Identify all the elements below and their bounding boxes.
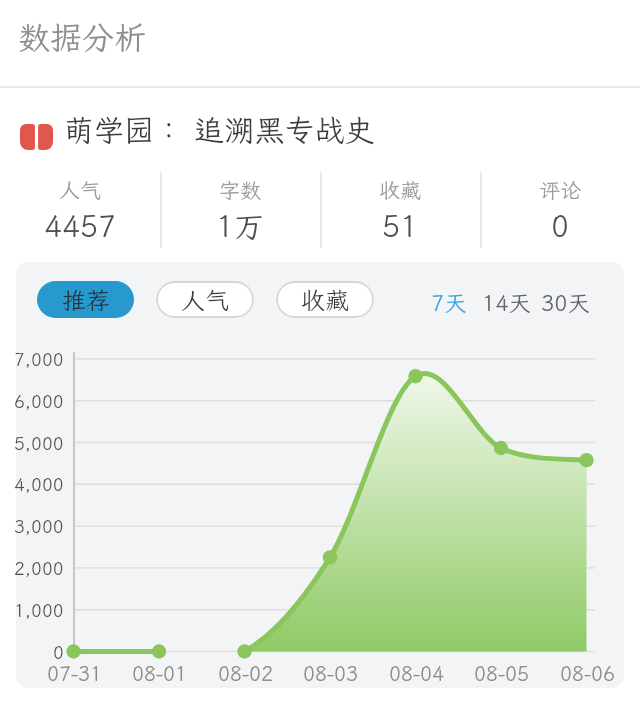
button[interactable]: 收藏	[276, 281, 374, 318]
staticText: 3,000	[14, 514, 64, 538]
staticText: 7,000	[14, 347, 64, 371]
staticText: 收藏	[379, 176, 421, 204]
staticText: 数据分析	[18, 16, 147, 58]
staticText: 08-01	[132, 660, 187, 686]
staticText: 08-05	[474, 660, 529, 686]
staticText: 6,000	[14, 389, 64, 413]
staticText: 评论	[539, 176, 581, 204]
button[interactable]: 30天	[541, 288, 590, 317]
staticText: 08-02	[218, 660, 273, 686]
button[interactable]: 萌学园： 追溯黑专战史	[64, 110, 375, 150]
button[interactable]: 7天	[431, 288, 467, 317]
staticText: 1,000	[14, 598, 64, 622]
staticText: 08-04	[389, 660, 444, 686]
staticText: 1万	[216, 206, 264, 246]
staticText: 人气	[181, 284, 229, 316]
staticText: 2,000	[14, 556, 64, 580]
staticText: 07-31	[47, 660, 102, 686]
staticText: 5,000	[14, 431, 64, 455]
staticText: 51	[382, 206, 418, 246]
staticText: 08-03	[303, 660, 358, 686]
staticText: 4,000	[14, 472, 64, 496]
button[interactable]: 人气	[156, 281, 254, 318]
button[interactable]: 推荐	[37, 281, 134, 318]
staticText: 0	[551, 206, 569, 246]
staticText: 字数	[219, 176, 261, 204]
staticText: 08-06	[560, 660, 615, 686]
button[interactable]: 14天	[482, 288, 531, 317]
staticText: 收藏	[301, 284, 349, 316]
staticText: 推荐	[62, 284, 110, 316]
staticText: 人气	[59, 176, 101, 204]
staticText: 4457	[44, 206, 116, 246]
staticText: 0	[53, 640, 64, 664]
